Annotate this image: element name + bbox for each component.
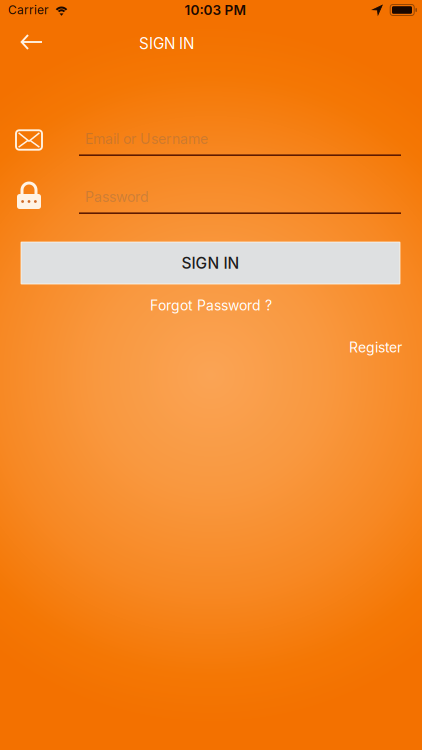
staticText: Carrier [8,3,49,17]
button[interactable]: Email or Username [42,124,422,156]
staticText: Register [349,339,402,356]
button[interactable]: SIGN IN [0,242,422,284]
button[interactable]: Password [42,182,422,214]
staticText: Password [85,188,149,205]
staticText: SIGN IN [181,254,239,272]
staticText: Forgot Password ? [150,297,272,314]
staticText: SIGN IN [139,34,194,53]
button[interactable]: Register [341,335,410,360]
staticText: 10:03 PM [184,2,246,18]
staticText: Email or Username [85,130,208,147]
button[interactable]: Forgot Password ? [140,293,282,318]
button[interactable]: Back [0,20,56,60]
